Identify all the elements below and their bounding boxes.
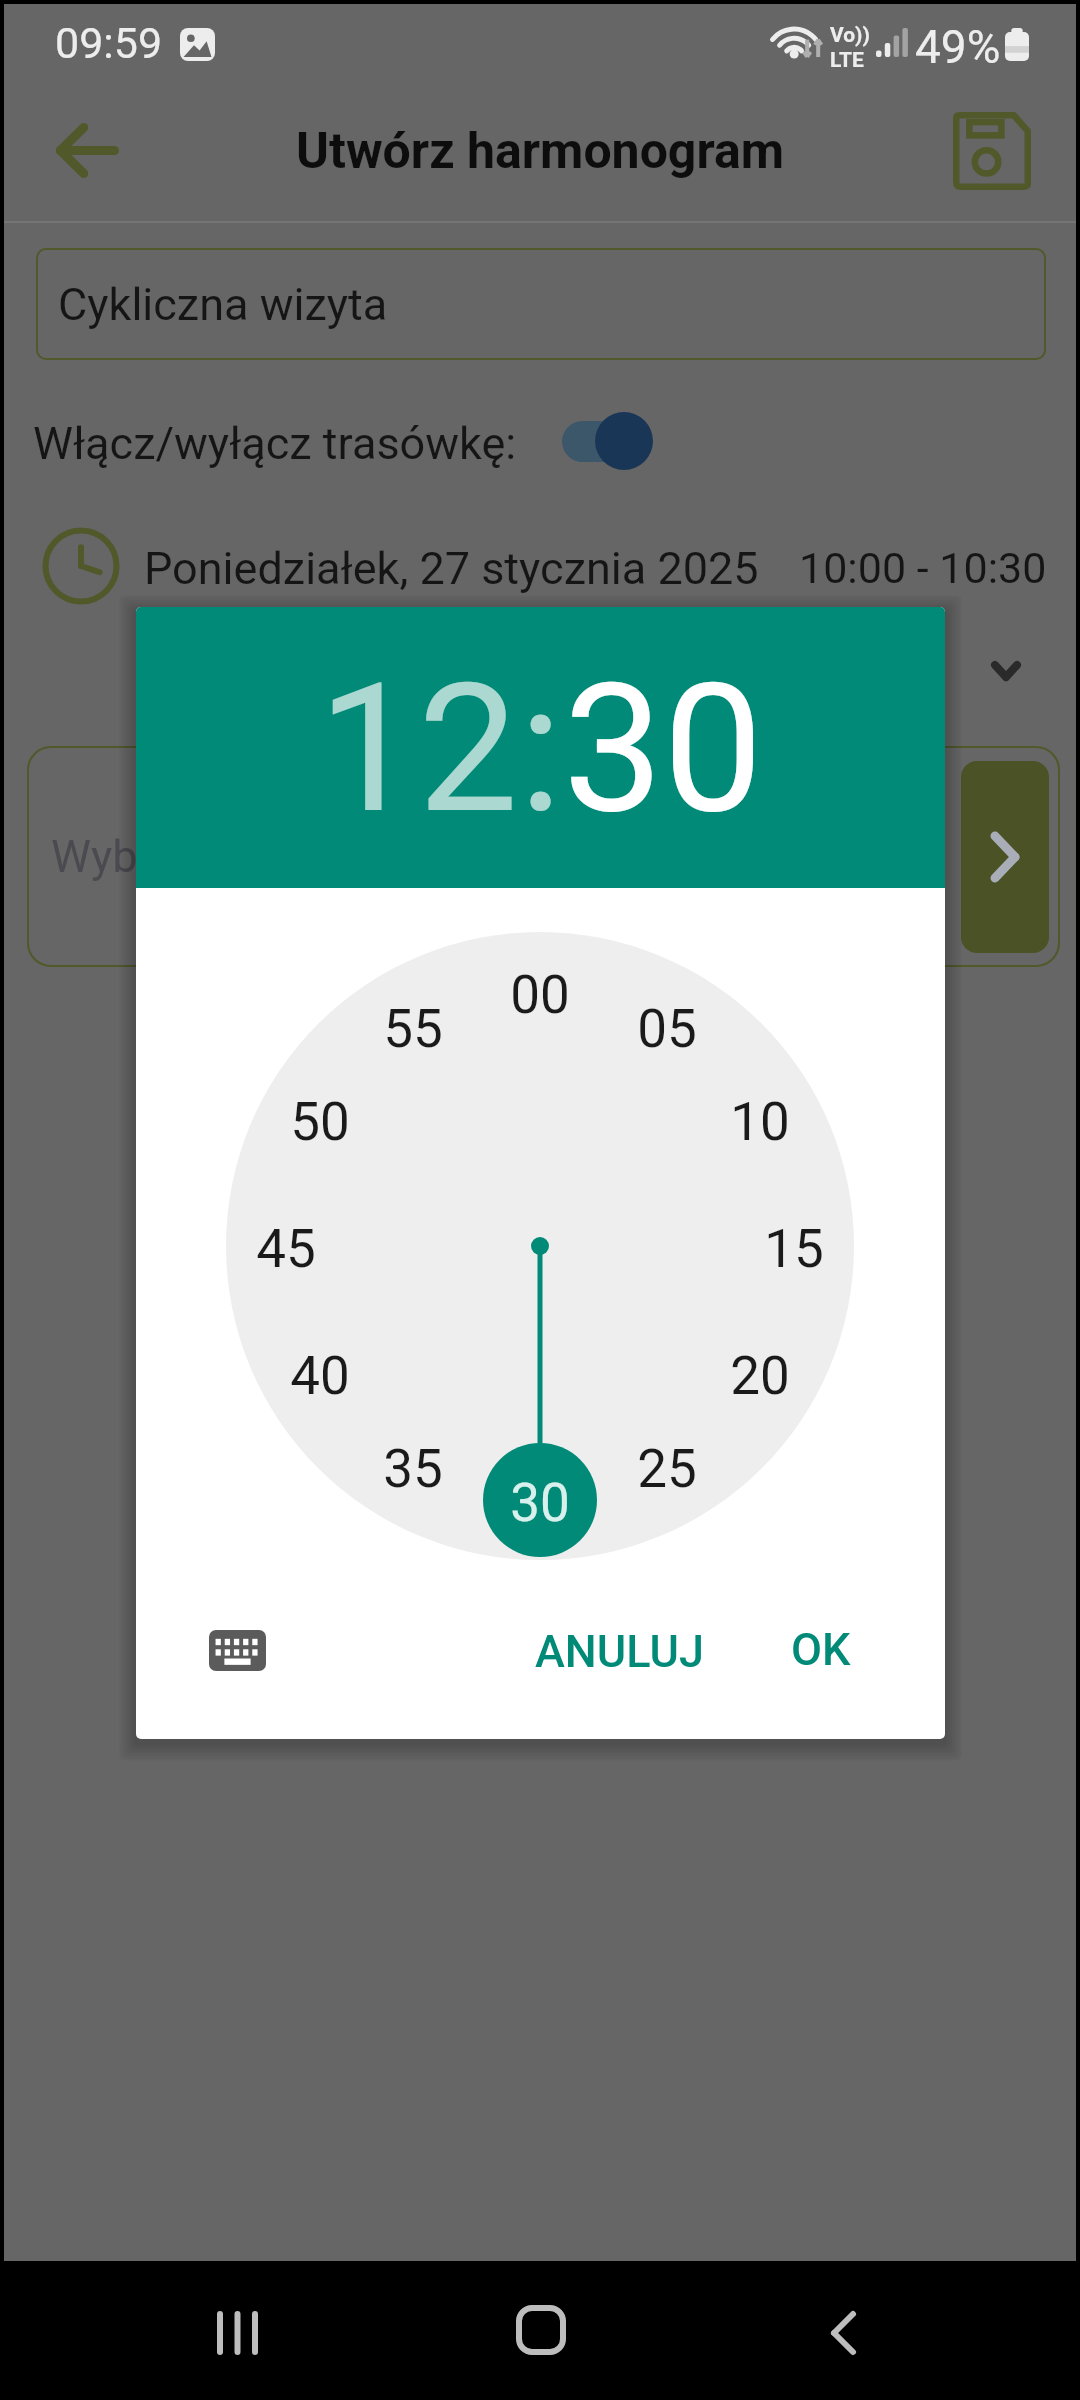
button[interactable]: 10:00 - 10:30 — [799, 543, 1047, 593]
staticText: 35 — [383, 1438, 443, 1500]
staticText: LTE — [830, 48, 864, 73]
button[interactable]: 10 — [705, 1082, 815, 1162]
staticText: 15 — [764, 1218, 824, 1280]
staticText: 20 — [730, 1345, 790, 1407]
button[interactable]: 50 — [265, 1082, 375, 1162]
button[interactable]: 30 — [563, 645, 764, 854]
button[interactable]: Home — [481, 2270, 601, 2390]
button[interactable]: Switch to text input mode — [189, 1608, 285, 1692]
staticText: 45 — [256, 1218, 316, 1280]
staticText: 10 — [730, 1091, 790, 1153]
staticText: : — [519, 645, 563, 854]
button[interactable]: 25 — [612, 1429, 722, 1509]
button[interactable]: 45 — [231, 1209, 341, 1289]
staticText: 50 — [290, 1091, 350, 1153]
button[interactable]: Wybierz klienta — [27, 746, 1060, 967]
staticText: Wybierz klienta — [51, 830, 354, 883]
button[interactable]: 00 — [485, 955, 595, 1035]
staticText: 00 — [510, 964, 570, 1026]
button[interactable]: Back — [31, 94, 143, 206]
staticText: Vo)) — [830, 23, 870, 48]
staticText: OK — [791, 1623, 851, 1676]
button[interactable]: 05 — [612, 989, 722, 1069]
staticText: Utwórz harmonogram — [296, 122, 784, 181]
button[interactable]: Recents — [177, 2273, 297, 2393]
staticText: 40 — [290, 1345, 350, 1407]
button[interactable]: 55 — [358, 989, 468, 1069]
staticText: 09:59 — [55, 18, 163, 68]
staticText: ANULUJ — [535, 1625, 705, 1678]
staticText: Cykliczna wizyta — [58, 278, 388, 331]
button[interactable]: Cykliczna wizyta — [36, 248, 1046, 360]
button[interactable]: OK — [763, 1601, 878, 1697]
button[interactable]: 35 — [358, 1429, 468, 1509]
button[interactable]: 30 — [485, 1463, 595, 1543]
staticText: 25 — [637, 1438, 697, 1500]
staticText: 30 — [510, 1472, 570, 1534]
staticText: 49% — [915, 20, 1001, 74]
staticText: 55 — [383, 998, 443, 1060]
button[interactable]: ANULUJ — [509, 1603, 730, 1699]
button[interactable]: 12 — [318, 645, 519, 854]
staticText: 05 — [637, 998, 697, 1060]
button[interactable]: Enable route — [556, 405, 664, 477]
button[interactable]: Back — [783, 2273, 903, 2393]
button[interactable]: 20 — [705, 1336, 815, 1416]
staticText: Włącz/wyłącz trasówkę: — [33, 417, 517, 470]
button[interactable]: Expand — [970, 635, 1042, 707]
button[interactable]: Next — [961, 761, 1049, 953]
button[interactable]: Save — [937, 96, 1047, 206]
button[interactable]: Poniedziałek, 27 stycznia 2025 — [144, 542, 759, 595]
button[interactable]: 15 — [739, 1209, 849, 1289]
button[interactable]: 40 — [265, 1336, 375, 1416]
